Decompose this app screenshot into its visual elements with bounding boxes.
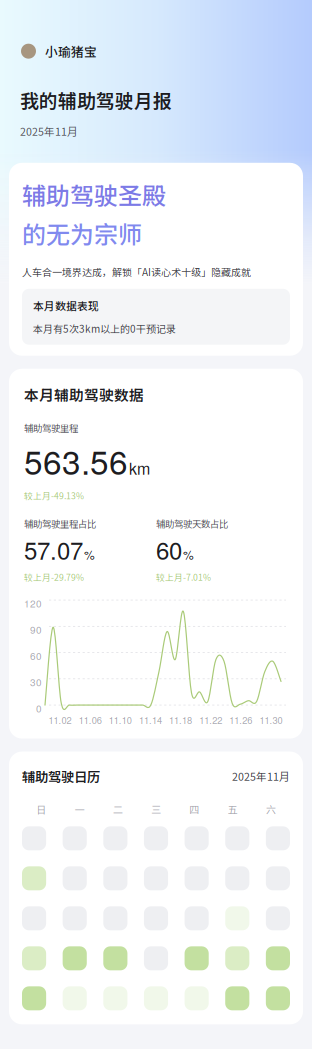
- staticText: 60: [156, 532, 182, 567]
- staticText: 2025年11月: [232, 768, 290, 784]
- staticText: 六: [266, 802, 276, 816]
- staticText: 11.02: [49, 713, 72, 727]
- staticText: 60: [30, 648, 42, 663]
- staticText: 辅助驾驶里程: [24, 421, 78, 434]
- staticText: 563.56: [24, 436, 128, 484]
- staticText: 辅助驾驶里程占比: [24, 517, 96, 530]
- staticText: 57.07: [24, 532, 83, 567]
- button[interactable]: 小瑜猪宝: [0, 0, 111, 64]
- staticText: 二: [113, 802, 123, 816]
- staticText: 11.10: [109, 713, 132, 727]
- staticText: 120: [24, 596, 42, 610]
- staticText: 11.30: [259, 713, 282, 727]
- staticText: 我的辅助驾驶月报: [20, 86, 172, 113]
- staticText: 本月有5次3km以上的0干预记录: [33, 321, 176, 336]
- staticText: 四: [189, 802, 199, 816]
- staticText: 11.22: [199, 713, 222, 727]
- staticText: 2025年11月: [20, 123, 78, 139]
- staticText: 11.14: [139, 713, 162, 727]
- staticText: 辅助驾驶天数占比: [156, 517, 228, 530]
- staticText: 日: [36, 802, 46, 816]
- staticText: 的无为宗师: [22, 216, 142, 250]
- staticText: 辅助驾驶圣殿: [22, 177, 166, 212]
- staticText: 小瑜猪宝: [45, 42, 97, 60]
- staticText: 11.18: [169, 713, 192, 727]
- staticText: 30: [30, 675, 42, 689]
- staticText: 较上月-49.13%: [24, 489, 84, 502]
- staticText: km: [129, 456, 150, 479]
- staticText: 较上月-7.01%: [156, 571, 211, 583]
- staticText: 0: [36, 701, 42, 715]
- staticText: 一: [74, 802, 84, 816]
- staticText: 人车合一境界达成，解锁「AI读心术十级」隐藏成就: [22, 264, 251, 279]
- staticText: 辅助驾驶日历: [22, 767, 100, 786]
- staticText: 11.06: [79, 713, 102, 727]
- staticText: 较上月-29.79%: [24, 571, 84, 583]
- staticText: 五: [228, 802, 238, 816]
- staticText: %: [183, 546, 194, 563]
- staticText: 三: [151, 802, 161, 816]
- staticText: 本月数据表现: [33, 298, 99, 313]
- staticText: 90: [30, 622, 42, 637]
- staticText: %: [84, 546, 95, 563]
- staticText: 本月辅助驾驶数据: [24, 384, 144, 405]
- staticText: 11.26: [229, 713, 252, 727]
